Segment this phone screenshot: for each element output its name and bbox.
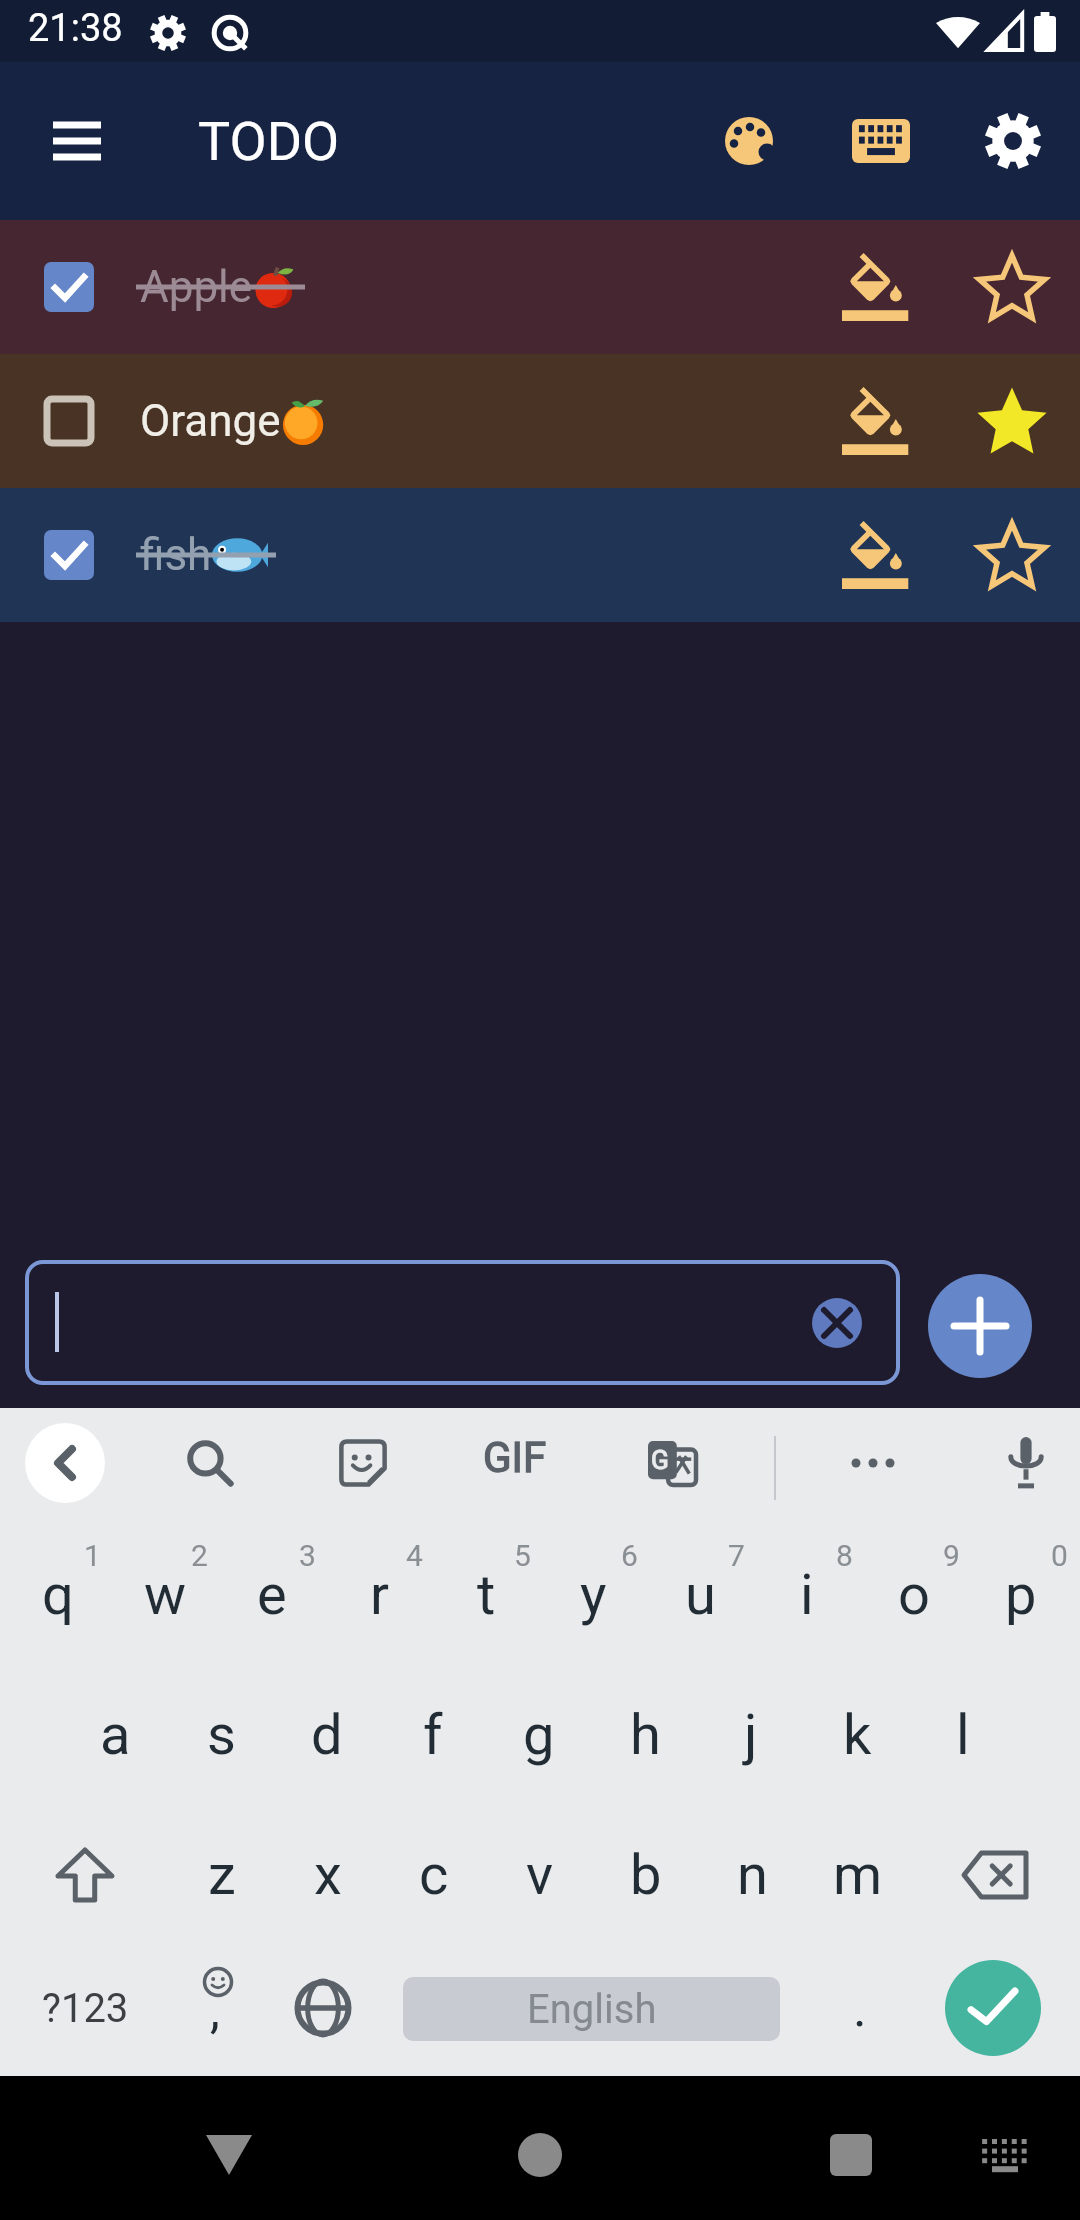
button[interactable]: b [594, 1810, 698, 1940]
staticText: b [630, 1842, 662, 1908]
button[interactable]: j [699, 1670, 803, 1800]
button[interactable]: . [820, 1943, 900, 2073]
staticText: f [423, 1702, 443, 1768]
button[interactable]: u [650, 1530, 750, 1660]
button[interactable]: i [757, 1530, 857, 1660]
button[interactable] [323, 1423, 403, 1503]
button[interactable]: English [403, 1977, 780, 2041]
staticText: e [257, 1562, 287, 1628]
button[interactable] [27, 62, 127, 220]
button[interactable]: z [170, 1810, 274, 1940]
button[interactable]: G [632, 1423, 712, 1503]
staticText: p [1005, 1562, 1037, 1628]
button[interactable]: ?123 [25, 1943, 145, 2073]
button[interactable]: p [971, 1530, 1071, 1660]
staticText: 4 [406, 1538, 423, 1573]
staticText: s [207, 1702, 236, 1768]
button[interactable]: f [381, 1670, 485, 1800]
button[interactable]: g [487, 1670, 591, 1800]
button[interactable] [968, 243, 1056, 331]
staticText: a [100, 1702, 131, 1768]
staticText: 5 [514, 1538, 531, 1573]
staticText: 21:38 [28, 6, 123, 51]
staticText: fish [140, 529, 212, 581]
staticText: g [523, 1702, 555, 1768]
staticText: , [210, 1981, 220, 2040]
button[interactable] [25, 1423, 105, 1503]
button[interactable]: l [911, 1670, 1015, 1800]
staticText: w [144, 1562, 187, 1628]
staticText: 0 [1051, 1538, 1068, 1573]
button[interactable] [968, 511, 1056, 599]
staticText: Orange [140, 395, 281, 447]
button[interactable]: w [115, 1530, 215, 1660]
staticText: 9 [943, 1538, 960, 1573]
button[interactable] [832, 243, 920, 331]
button[interactable] [968, 377, 1056, 465]
button[interactable]: e [222, 1530, 322, 1660]
button[interactable] [807, 2119, 895, 2191]
button[interactable] [496, 2119, 584, 2191]
button[interactable] [963, 62, 1063, 220]
button[interactable] [44, 262, 94, 312]
staticText: G [651, 1445, 669, 1475]
button[interactable] [961, 2119, 1049, 2191]
staticText: 3 [299, 1538, 316, 1573]
staticText: 2 [191, 1538, 208, 1573]
button[interactable] [812, 1298, 862, 1348]
button[interactable]: v [488, 1810, 592, 1940]
button[interactable] [185, 2119, 273, 2191]
staticText: d [311, 1702, 343, 1768]
button[interactable] [833, 1423, 913, 1503]
staticText: m [833, 1842, 883, 1908]
button[interactable] [283, 1943, 363, 2073]
button[interactable] [986, 1423, 1066, 1503]
button[interactable]: , [178, 1943, 258, 2073]
button[interactable] [699, 62, 799, 220]
staticText: z [208, 1842, 236, 1908]
staticText: x [314, 1842, 342, 1908]
button[interactable]: Orange [0, 354, 1080, 488]
button[interactable] [832, 377, 920, 465]
button[interactable] [945, 1960, 1041, 2056]
button[interactable]: a [63, 1670, 167, 1800]
button[interactable]: o [864, 1530, 964, 1660]
button[interactable] [30, 1810, 140, 1940]
button[interactable]: h [593, 1670, 697, 1800]
staticText: 1 [84, 1538, 101, 1573]
button[interactable] [928, 1274, 1032, 1378]
staticText: v [526, 1842, 554, 1908]
button[interactable]: q [8, 1530, 108, 1660]
button[interactable]: t [436, 1530, 536, 1660]
button[interactable] [940, 1810, 1050, 1940]
staticText: GIF [483, 1433, 547, 1482]
staticText: q [42, 1562, 74, 1628]
button[interactable]: c [382, 1810, 486, 1940]
staticText: n [737, 1842, 768, 1908]
button[interactable]: m [806, 1810, 910, 1940]
button[interactable]: s [169, 1670, 273, 1800]
staticText: j [744, 1702, 758, 1768]
staticText: Apple [140, 261, 253, 313]
staticText: ?123 [42, 1985, 129, 2032]
button[interactable] [170, 1423, 250, 1503]
staticText: English [527, 1986, 657, 2033]
button[interactable] [44, 396, 94, 446]
staticText: r [370, 1562, 389, 1628]
button[interactable]: r [329, 1530, 429, 1660]
button[interactable]: n [700, 1810, 804, 1940]
button[interactable]: Apple [0, 220, 1080, 354]
staticText: TODO [198, 110, 340, 173]
button[interactable] [832, 511, 920, 599]
staticText: u [685, 1562, 716, 1628]
staticText: k [843, 1702, 872, 1768]
button[interactable] [831, 62, 931, 220]
staticText: i [800, 1562, 814, 1628]
button[interactable]: d [275, 1670, 379, 1800]
button[interactable] [44, 530, 94, 580]
button[interactable]: y [543, 1530, 643, 1660]
button[interactable]: fish [0, 488, 1080, 622]
button[interactable]: k [805, 1670, 909, 1800]
staticText: c [419, 1842, 449, 1908]
button[interactable]: x [276, 1810, 380, 1940]
